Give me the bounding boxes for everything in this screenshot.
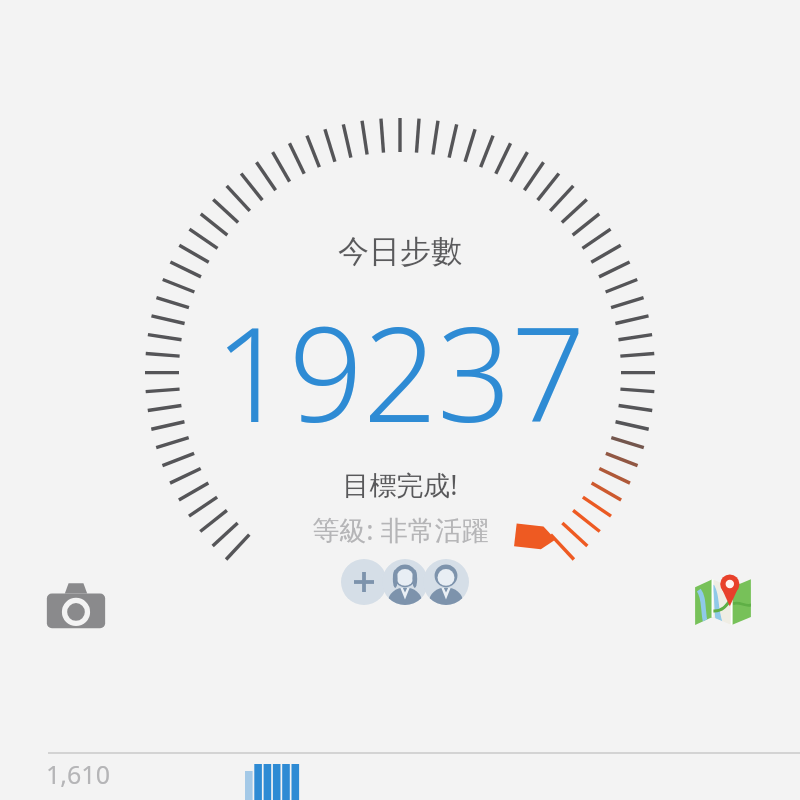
button[interactable]: Friends <box>341 559 479 605</box>
staticText: 今日步數 <box>338 232 462 271</box>
staticText: 目標完成! <box>342 466 458 503</box>
staticText: 19237 <box>214 283 586 460</box>
button[interactable]: Camera <box>45 580 107 636</box>
button[interactable]: Map <box>692 567 754 628</box>
staticText: 1,610 <box>46 757 110 791</box>
staticText: 等級: 非常活躍 <box>312 511 489 548</box>
